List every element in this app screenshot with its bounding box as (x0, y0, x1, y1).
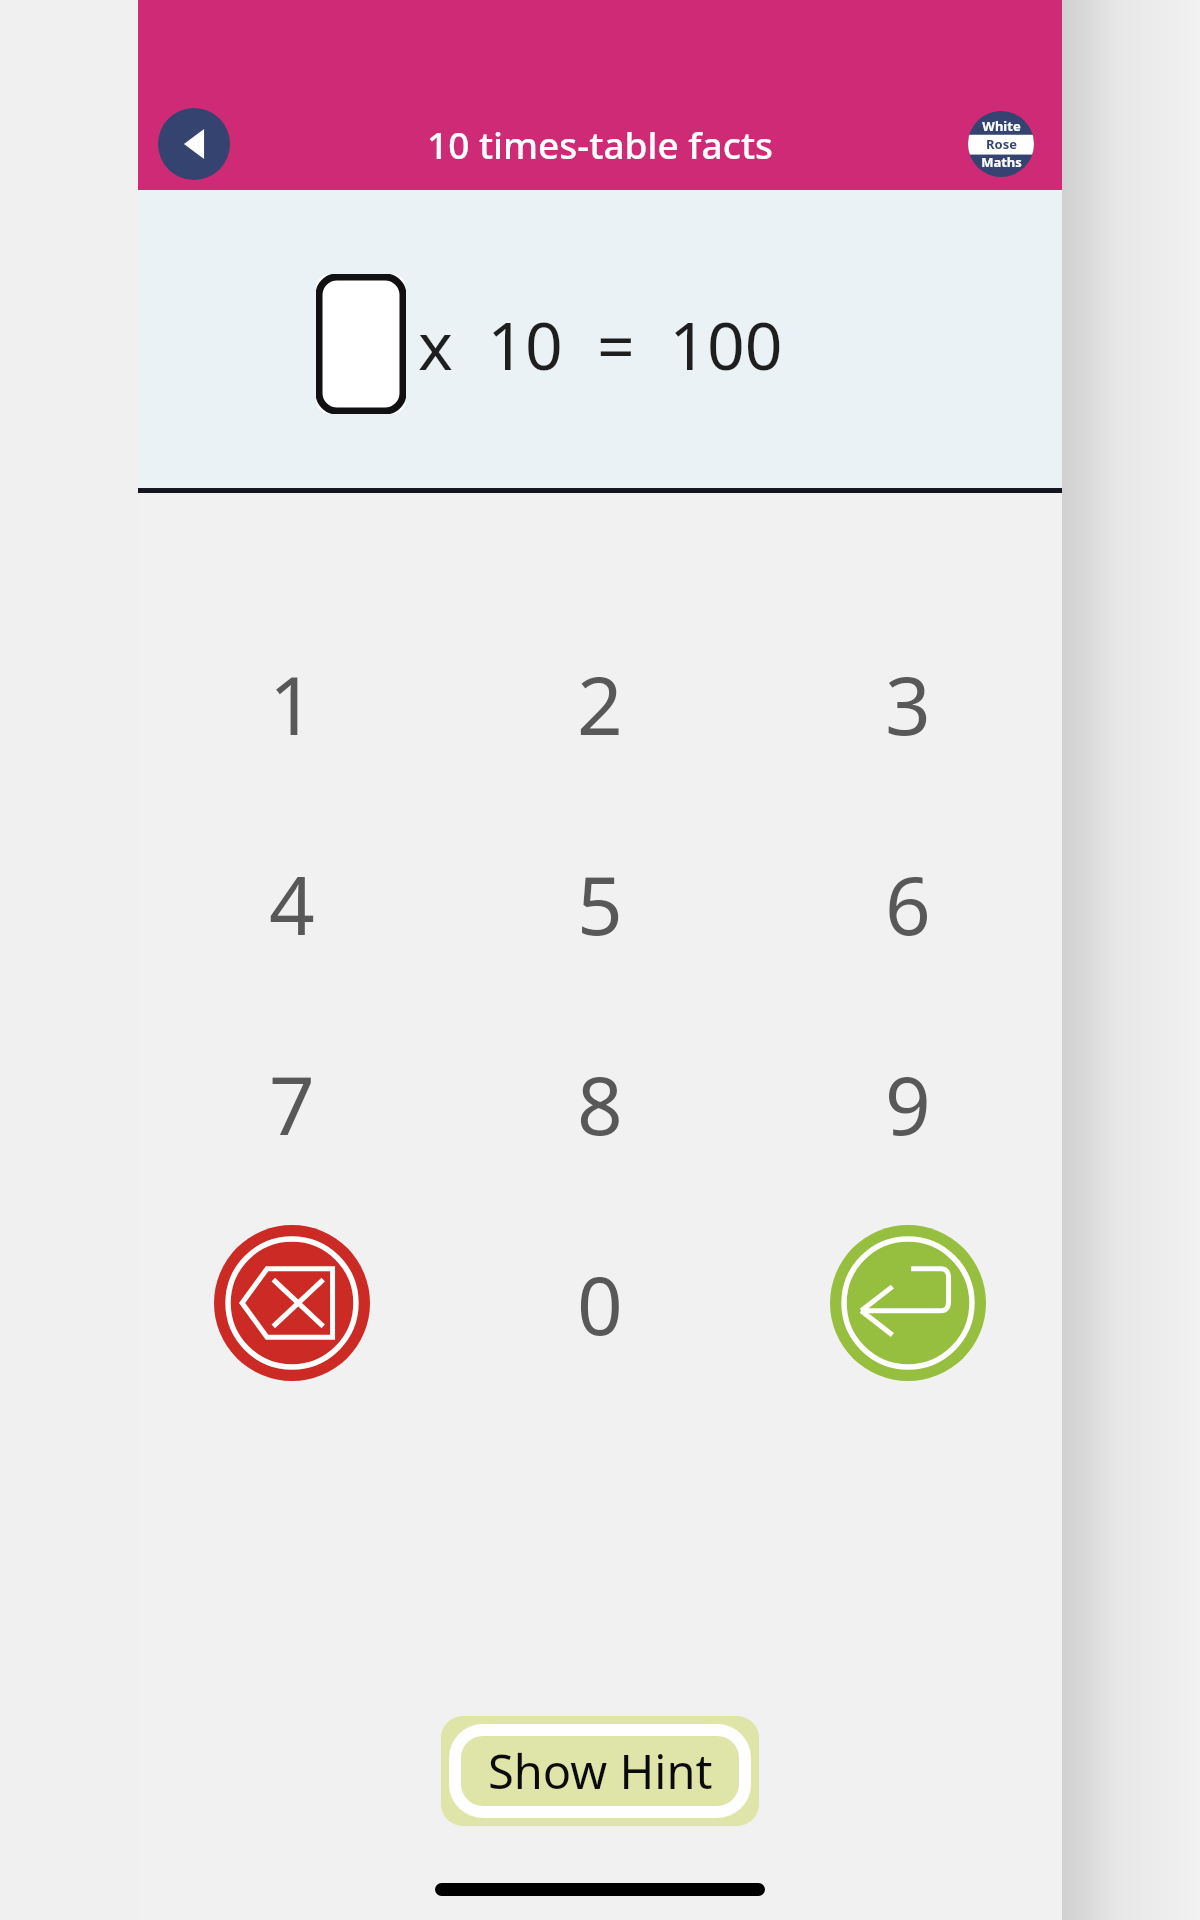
button[interactable]: 2 (446, 603, 754, 803)
staticText: White (982, 117, 1021, 135)
button[interactable]: Enter (830, 1225, 986, 1381)
button[interactable]: 8 (446, 1003, 754, 1203)
staticText: Rose (986, 135, 1017, 153)
button[interactable]: 7 (138, 1003, 446, 1203)
button[interactable]: Back (158, 108, 230, 180)
staticText: 10 times-table facts (138, 119, 1062, 169)
staticText: 8 (577, 1049, 623, 1158)
staticText: 7 (269, 1049, 315, 1158)
button[interactable]: 1 (138, 603, 446, 803)
staticText: Maths (981, 153, 1022, 171)
staticText: 3 (885, 649, 931, 758)
staticText: x 10 = 100 (418, 299, 783, 389)
button[interactable]: Answer box (316, 274, 406, 414)
button[interactable]: Delete (214, 1225, 370, 1381)
staticText: 0 (577, 1249, 623, 1358)
staticText: 5 (577, 849, 623, 958)
staticText: 4 (269, 849, 315, 958)
button[interactable]: 5 (446, 803, 754, 1003)
staticText: Show Hint (488, 1739, 713, 1803)
staticText: 9 (885, 1049, 931, 1158)
staticText: 1 (269, 649, 315, 758)
button[interactable]: 6 (754, 803, 1062, 1003)
staticText: 6 (885, 849, 931, 958)
button[interactable]: 3 (754, 603, 1062, 803)
button[interactable]: 4 (138, 803, 446, 1003)
button[interactable]: White Rose Maths (968, 111, 1034, 177)
staticText: 2 (577, 649, 623, 758)
button[interactable]: 9 (754, 1003, 1062, 1203)
button[interactable]: Show Hint (441, 1716, 759, 1826)
